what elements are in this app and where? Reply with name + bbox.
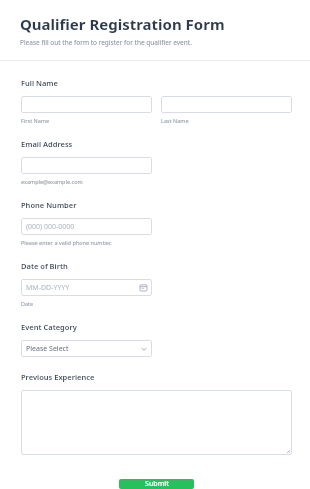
staticText: Qualifier Registration Form [20,14,225,34]
staticText: Please enter a valid phone number. [21,239,112,246]
button[interactable]: (000) 000-0000 [21,218,152,235]
other: Pick date [140,284,147,291]
staticText: Phone Number [21,200,77,210]
staticText: Please Select [26,344,69,354]
staticText: MM-DD-YYYY [26,283,70,293]
button[interactable]: MM-DD-YYYY [21,279,152,296]
staticText: Submit [145,479,169,489]
staticText: Last Name [161,117,189,124]
button[interactable]: Please Select [21,340,152,357]
staticText: example@example.com [21,178,83,185]
staticText: Please fill out the form to register for… [20,38,192,47]
staticText: First Name [21,117,50,124]
staticText: (000) 000-0000 [26,222,75,232]
staticText: Date [21,300,34,307]
staticText: Event Category [21,322,77,332]
staticText: Email Address [21,139,73,149]
button[interactable] [21,96,152,113]
staticText: Full Name [21,78,58,88]
other: Open dropdown [141,346,147,352]
button[interactable]: Submit [119,479,194,489]
button[interactable] [21,157,152,174]
staticText: Date of Birth [21,261,68,271]
button[interactable] [21,390,292,455]
staticText: Previous Experience [21,372,95,382]
button[interactable] [161,96,292,113]
